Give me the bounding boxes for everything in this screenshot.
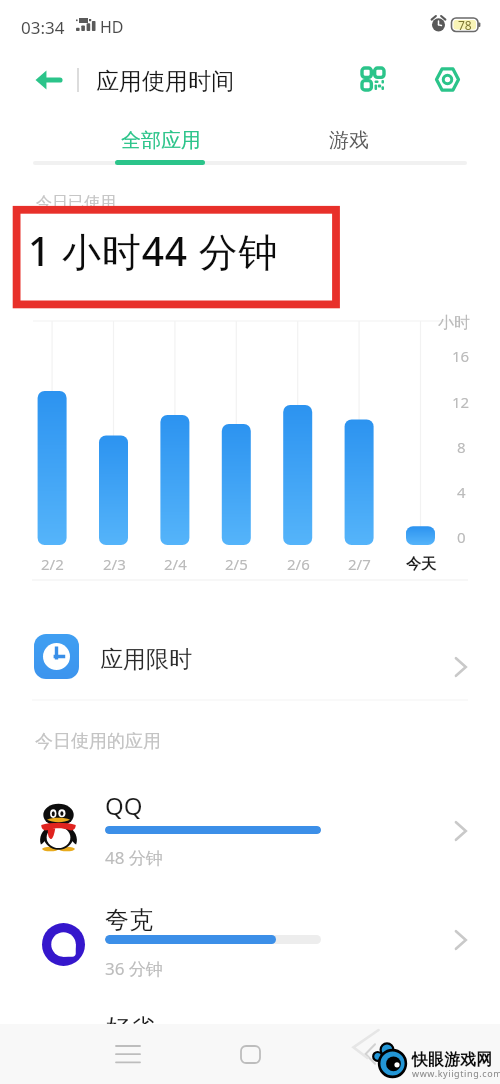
staticText: 快眼游戏网 <box>412 1050 492 1070</box>
button[interactable]: 全部应用 <box>115 120 207 160</box>
button[interactable]: Home <box>220 1024 280 1084</box>
button[interactable]: QQ <box>0 775 500 885</box>
staticText: 48 分钟 <box>105 846 163 869</box>
staticText: 12 <box>452 392 470 410</box>
staticText: 2/5 <box>225 554 248 574</box>
staticText: 应用限时 <box>100 645 192 674</box>
staticText: 4 <box>457 482 466 500</box>
button[interactable]: 游戏 <box>325 120 373 160</box>
staticText: QQ <box>105 789 143 822</box>
staticText: 今日已使用 <box>36 193 116 213</box>
button[interactable]: Back <box>26 60 70 100</box>
staticText: 03:34 <box>21 16 65 39</box>
staticText: 78 <box>458 17 472 31</box>
staticText: 16 <box>452 346 470 364</box>
button[interactable]: Scan code <box>351 58 395 100</box>
staticText: 好省 <box>106 1013 154 1043</box>
staticText: 夸克 <box>105 905 153 935</box>
staticText: 今天 <box>406 555 436 574</box>
staticText: 2/7 <box>348 554 371 574</box>
staticText: 今日使用的应用 <box>35 730 161 753</box>
staticText: 2/4 <box>164 554 187 574</box>
button[interactable]: 夸克 <box>0 885 500 995</box>
staticText: www.kyiigting.com <box>412 1067 500 1079</box>
staticText: HD <box>100 16 124 38</box>
staticText: 游戏 <box>329 128 369 153</box>
staticText: 8 <box>457 437 466 455</box>
staticText: 0 <box>457 527 466 545</box>
staticText: 全部应用 <box>121 128 201 153</box>
button[interactable]: 应用限时 <box>0 610 500 700</box>
button[interactable]: Back <box>340 1024 400 1084</box>
staticText: 2/6 <box>287 554 310 574</box>
staticText: 2/2 <box>41 554 64 574</box>
staticText: 小时 <box>438 313 470 333</box>
button[interactable]: Settings <box>425 57 469 101</box>
staticText: 应用使用时间 <box>96 67 234 96</box>
staticText: 36 分钟 <box>105 957 163 980</box>
staticText: 2/3 <box>103 554 126 574</box>
button[interactable]: Recent apps <box>98 1024 158 1084</box>
staticText: 1 小时44 分钟 <box>28 224 279 277</box>
